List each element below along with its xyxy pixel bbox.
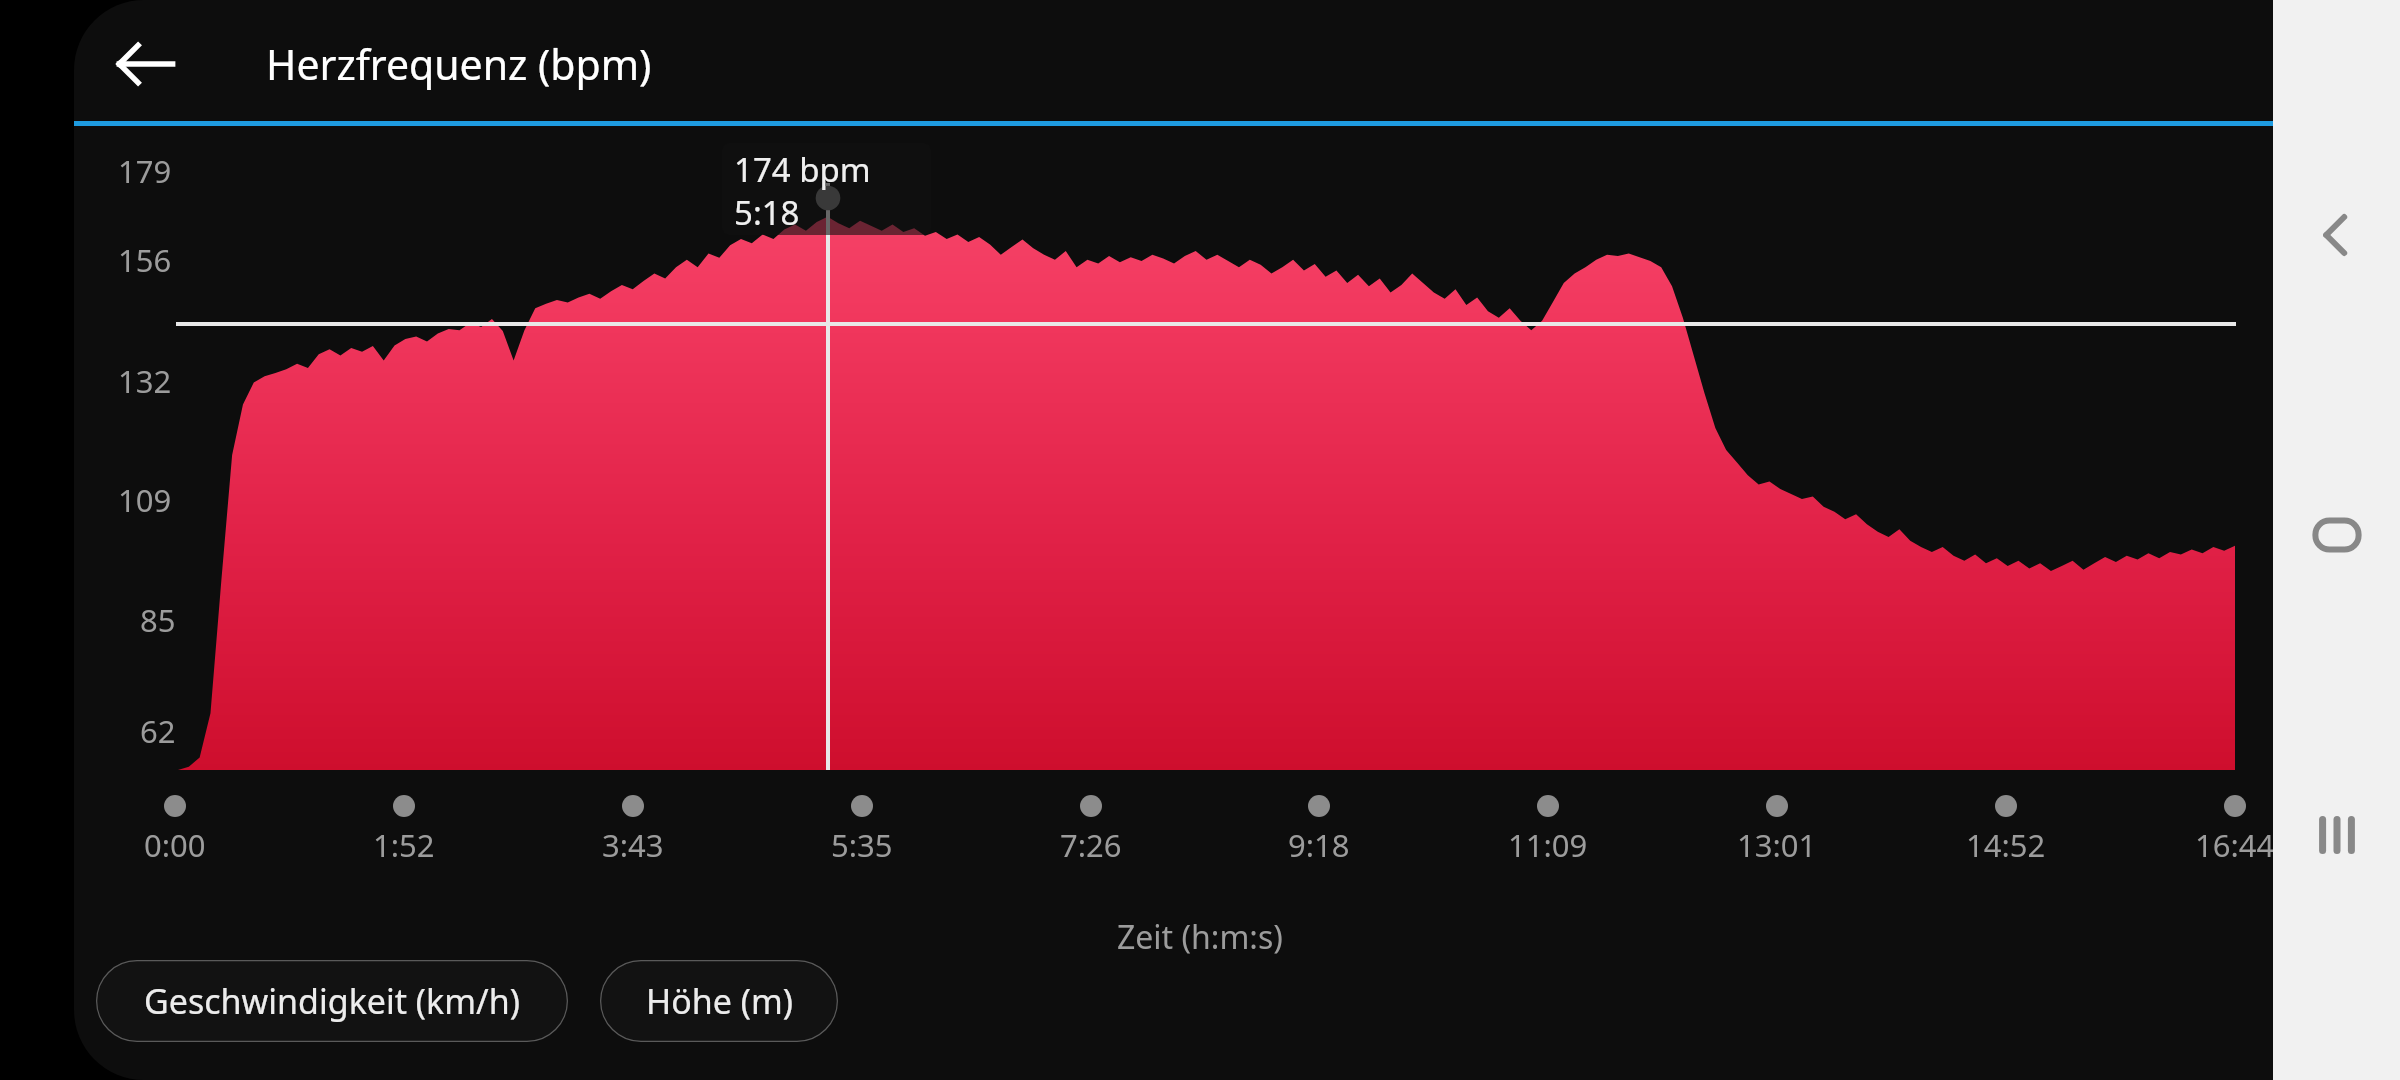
staticText: 1:52 [373, 824, 435, 866]
staticText: Geschwindigkeit (km/h) [144, 978, 520, 1024]
staticText: 62 [140, 710, 176, 752]
staticText: 13:01 [1737, 824, 1817, 866]
staticText: Zeit (h:m:s) [1117, 915, 1283, 959]
staticText: 16:44 [2195, 824, 2275, 866]
staticText: 3:43 [602, 824, 664, 866]
staticText: 5:35 [831, 824, 893, 866]
staticText: Herzfrequenz (bpm) [266, 36, 652, 92]
staticText: 0:00 [144, 824, 206, 866]
staticText: 174 bpm [734, 147, 871, 192]
staticText: 5:18 [734, 190, 800, 235]
staticText: Höhe (m) [646, 978, 793, 1024]
staticText: 156 [118, 239, 172, 281]
button[interactable]: Höhe (m) [600, 960, 838, 1042]
staticText: 9:18 [1288, 824, 1350, 866]
button[interactable]: Startbildschirm [2307, 505, 2367, 565]
button[interactable]: Zurück [2307, 205, 2367, 265]
staticText: 109 [118, 479, 172, 521]
button[interactable]: Geschwindigkeit (km/h) [96, 960, 568, 1042]
button[interactable]: Zurück [110, 28, 182, 100]
staticText: 14:52 [1966, 824, 2046, 866]
staticText: 7:26 [1060, 824, 1122, 866]
staticText: 179 [118, 150, 172, 192]
staticText: 11:09 [1508, 824, 1588, 866]
staticText: 85 [140, 599, 176, 641]
button[interactable]: Letzte Apps [2307, 805, 2367, 865]
staticText: 132 [118, 360, 172, 402]
